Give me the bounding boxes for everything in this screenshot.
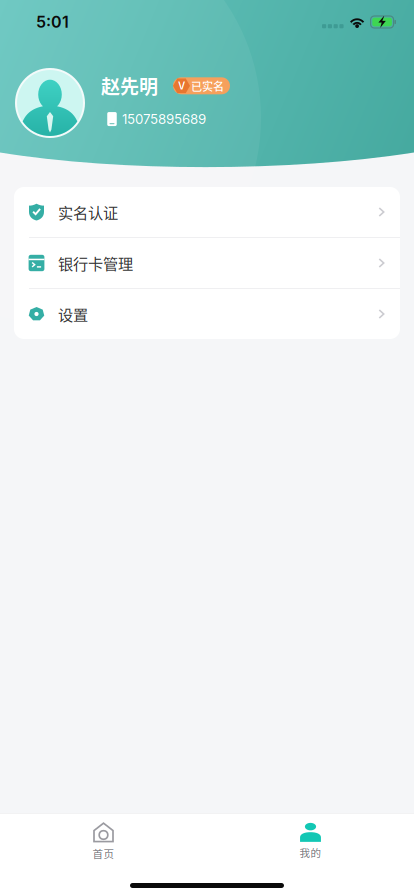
staticText: 15075895689 bbox=[122, 111, 206, 127]
staticText: 赵先明 bbox=[101, 72, 158, 100]
button[interactable]: 设置 bbox=[14, 289, 400, 339]
staticText: 首页 bbox=[92, 846, 114, 861]
staticText: 银行卡管理 bbox=[58, 252, 133, 274]
button[interactable]: 我的 bbox=[207, 816, 414, 860]
staticText: 我的 bbox=[299, 845, 321, 860]
staticText: 实名认证 bbox=[58, 201, 118, 223]
button[interactable]: 首页 bbox=[0, 815, 207, 861]
staticText: 已实名 bbox=[191, 78, 224, 94]
staticText: 设置 bbox=[58, 303, 88, 325]
staticText: 5:01 bbox=[36, 12, 69, 32]
button[interactable]: 实名认证 bbox=[14, 187, 400, 238]
staticText: V bbox=[178, 80, 185, 92]
button[interactable]: 银行卡管理 bbox=[14, 238, 400, 289]
